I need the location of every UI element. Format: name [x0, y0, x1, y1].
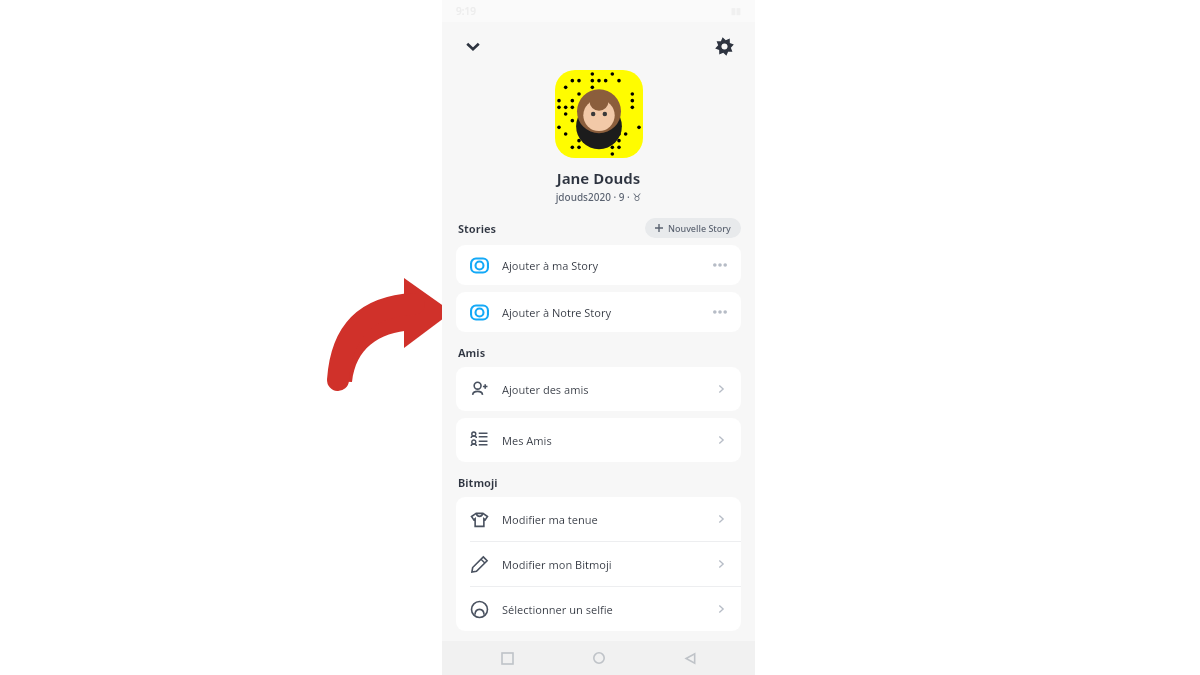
staticText: Bitmoji	[458, 475, 755, 490]
staticText: 9:19	[456, 4, 476, 18]
button[interactable]: Ajouter à Notre Story	[456, 292, 741, 332]
button[interactable]: Sélectionner un selfie	[456, 587, 741, 631]
staticText: jdouds2020 · 9 · ♉	[442, 190, 755, 204]
button[interactable]: Mes Amis	[456, 418, 741, 462]
staticText: Ajouter à ma Story	[502, 258, 599, 273]
staticText: Nouvelle Story	[668, 222, 731, 234]
button[interactable]: Modifier mon Bitmoji	[456, 542, 741, 586]
staticText: Ajouter à Notre Story	[502, 305, 612, 320]
button[interactable]: Recents	[494, 645, 520, 671]
staticText: Sélectionner un selfie	[502, 602, 613, 617]
button[interactable]: Modifier ma tenue	[456, 497, 741, 541]
staticText: Mes Amis	[502, 433, 552, 448]
staticText: Stories	[458, 221, 497, 236]
button[interactable]: Ajouter à ma Story	[456, 245, 741, 285]
button[interactable]: Close	[456, 29, 490, 63]
staticText: Amis	[458, 345, 755, 360]
button[interactable]: Home	[586, 645, 612, 671]
button[interactable]: Back	[677, 645, 703, 671]
staticText: Ajouter des amis	[502, 382, 589, 397]
button[interactable]: Settings	[707, 29, 741, 63]
button[interactable]	[555, 70, 643, 158]
staticText: Jane Douds	[442, 168, 755, 188]
staticText: Modifier mon Bitmoji	[502, 557, 612, 572]
button[interactable]: Ajouter des amis	[456, 367, 741, 411]
button[interactable]: Nouvelle Story	[645, 218, 741, 238]
staticText: ▮▮	[731, 6, 741, 16]
staticText: Modifier ma tenue	[502, 512, 598, 527]
